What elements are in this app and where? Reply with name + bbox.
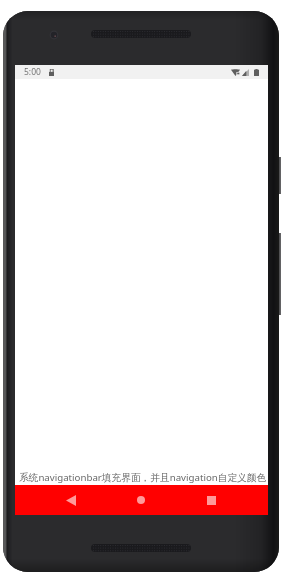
button[interactable]: Back	[54, 485, 88, 515]
staticText: 5:00	[24, 66, 41, 78]
button[interactable]: Recent apps	[194, 485, 228, 515]
button[interactable]: Home	[124, 485, 158, 515]
staticText: 系统navigationbar填充界面，并且navigation自定义颜色	[19, 471, 267, 484]
